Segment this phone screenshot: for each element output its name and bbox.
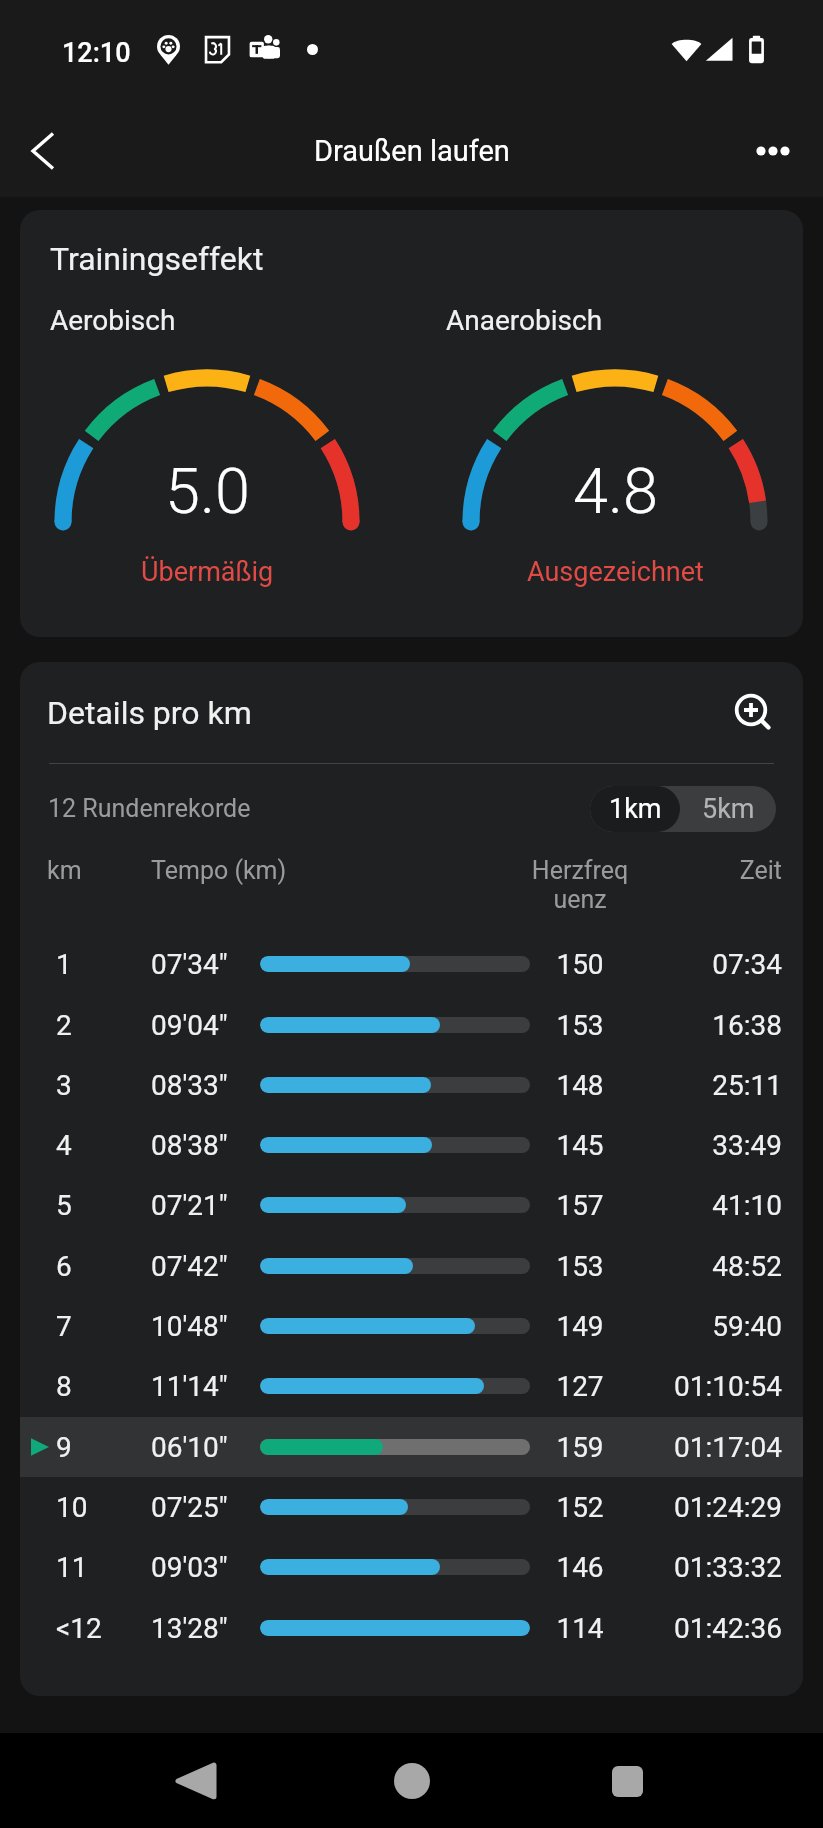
staticText: 41:10 xyxy=(582,1189,782,1222)
staticText: 07'34" xyxy=(151,948,228,981)
staticText: 16:38 xyxy=(582,1009,782,1042)
staticText: 09'04" xyxy=(151,1009,228,1042)
staticText: <12 xyxy=(56,1612,102,1645)
button[interactable]: More options xyxy=(740,118,806,184)
staticText: 1 xyxy=(56,948,72,981)
button[interactable]: 11 xyxy=(20,1537,803,1597)
staticText: 153 xyxy=(510,1250,650,1283)
staticText: 12 Rundenrekorde xyxy=(48,794,251,823)
staticText: 9 xyxy=(56,1431,72,1464)
staticText: 01:17:04 xyxy=(582,1431,782,1464)
staticText: Aerobisch xyxy=(50,304,176,337)
staticText: 09'03" xyxy=(151,1551,228,1584)
button[interactable]: Back xyxy=(160,1745,232,1817)
staticText: 01:24:29 xyxy=(582,1491,782,1524)
button[interactable]: 5 xyxy=(20,1175,803,1235)
button[interactable]: 1km xyxy=(590,786,680,832)
staticText: 148 xyxy=(510,1069,650,1102)
staticText: 06'10" xyxy=(151,1431,228,1464)
staticText: 145 xyxy=(510,1129,650,1162)
staticText: 08'38" xyxy=(151,1129,228,1162)
button[interactable]: Home xyxy=(376,1745,448,1817)
staticText: 11 xyxy=(56,1551,88,1584)
staticText: 159 xyxy=(510,1431,650,1464)
staticText: 4 xyxy=(56,1129,72,1162)
staticText: km xyxy=(47,856,82,885)
staticText: Übermäßig xyxy=(141,556,274,588)
staticText: 13'28" xyxy=(151,1612,228,1645)
staticText: 33:49 xyxy=(582,1129,782,1162)
staticText: 01:33:32 xyxy=(582,1551,782,1584)
staticText: 5 xyxy=(56,1189,72,1222)
staticText: 07'25" xyxy=(151,1491,228,1524)
button[interactable]: 2 xyxy=(20,995,803,1055)
staticText: 5km xyxy=(702,793,755,825)
staticText: Anaerobisch xyxy=(446,304,603,337)
staticText: Herzfrequenz xyxy=(526,856,634,914)
button[interactable]: 6 xyxy=(20,1236,803,1296)
staticText: 01:42:36 xyxy=(582,1612,782,1645)
staticText: 07'42" xyxy=(151,1250,228,1283)
staticText: 12:10 xyxy=(62,37,131,69)
button[interactable]: 7 xyxy=(20,1296,803,1356)
staticText: 07'21" xyxy=(151,1189,228,1222)
staticText: Zeit xyxy=(622,856,782,885)
button[interactable]: 3 xyxy=(20,1055,803,1115)
staticText: Trainingseffekt xyxy=(50,240,264,278)
button[interactable]: Recent apps xyxy=(591,1745,663,1817)
staticText: 153 xyxy=(510,1009,650,1042)
staticText: 48:52 xyxy=(582,1250,782,1283)
button[interactable]: <12 xyxy=(20,1598,803,1658)
staticText: 1km xyxy=(609,793,662,825)
button[interactable]: 8 xyxy=(20,1356,803,1416)
staticText: Tempo (km) xyxy=(151,856,287,885)
staticText: 152 xyxy=(510,1491,650,1524)
staticText: 3 xyxy=(56,1069,72,1102)
staticText: 157 xyxy=(510,1189,650,1222)
staticText: Details pro km xyxy=(47,694,252,732)
staticText: 10'48" xyxy=(151,1310,228,1343)
staticText: 11'14" xyxy=(151,1370,228,1403)
staticText: 59:40 xyxy=(582,1310,782,1343)
staticText: 7 xyxy=(56,1310,72,1343)
staticText: 8 xyxy=(56,1370,72,1403)
staticText: 07:34 xyxy=(582,948,782,981)
staticText: Draußen laufen xyxy=(314,134,510,168)
staticText: 10 xyxy=(56,1491,88,1524)
staticText: 25:11 xyxy=(582,1069,782,1102)
staticText: 150 xyxy=(510,948,650,981)
button[interactable]: 9 xyxy=(20,1417,803,1477)
staticText: 6 xyxy=(56,1250,72,1283)
staticText: Ausgezeichnet xyxy=(527,556,704,588)
staticText: 127 xyxy=(510,1370,650,1403)
button[interactable]: 4 xyxy=(20,1115,803,1175)
staticText: 01:10:54 xyxy=(582,1370,782,1403)
button[interactable]: 5km xyxy=(680,786,776,832)
button[interactable]: Zoom in xyxy=(724,683,782,741)
staticText: 2 xyxy=(56,1009,72,1042)
button[interactable]: 1 xyxy=(20,934,803,994)
staticText: 149 xyxy=(510,1310,650,1343)
staticText: 5.0 xyxy=(165,455,250,529)
staticText: 146 xyxy=(510,1551,650,1584)
staticText: 4.8 xyxy=(573,455,658,529)
staticText: 114 xyxy=(510,1612,650,1645)
staticText: 08'33" xyxy=(151,1069,228,1102)
button[interactable]: 10 xyxy=(20,1477,803,1537)
button[interactable]: Back xyxy=(10,118,76,184)
